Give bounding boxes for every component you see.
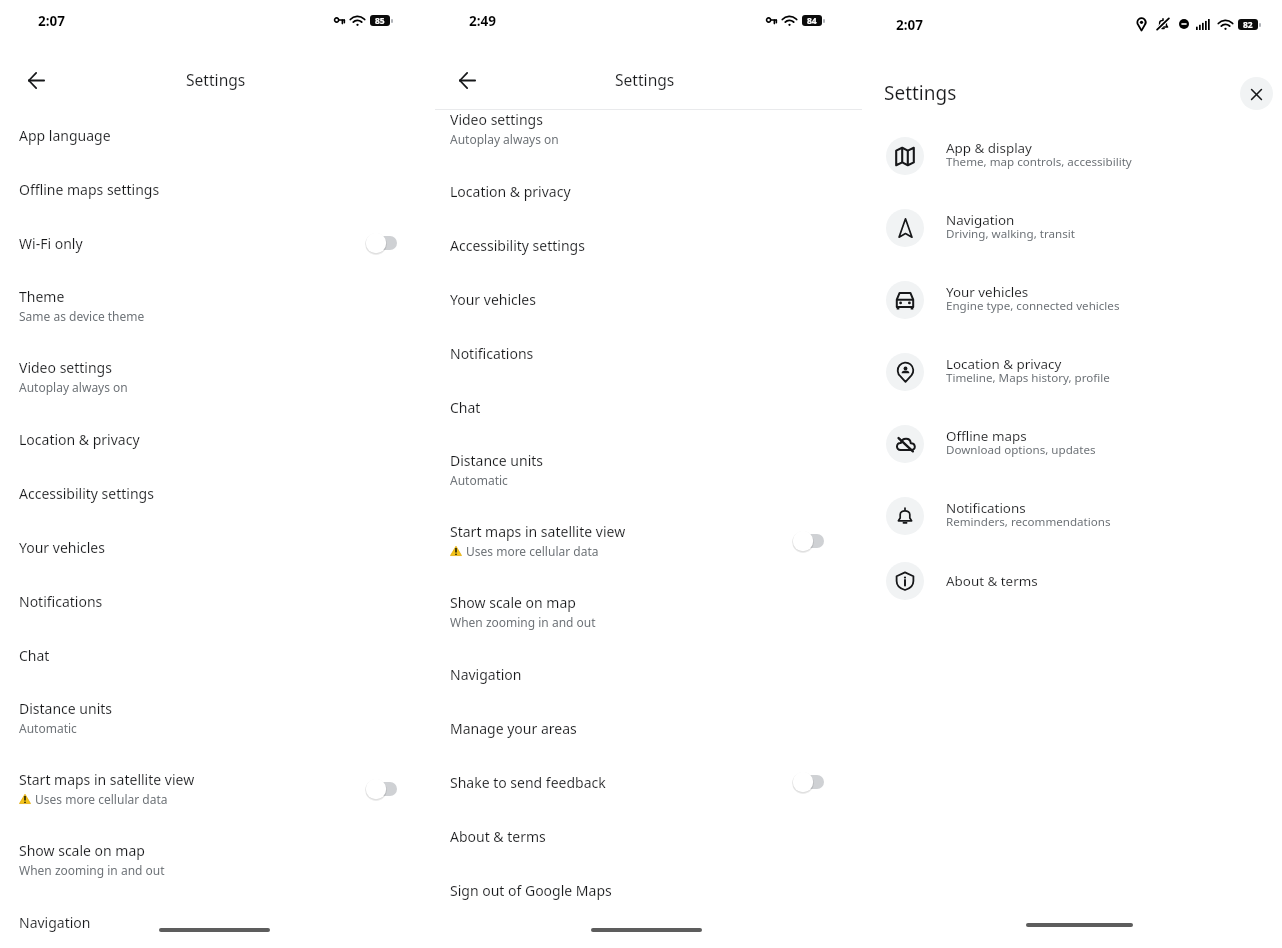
button[interactable]: Video settings <box>431 93 858 164</box>
button[interactable]: Location & privacy <box>431 164 858 218</box>
staticText: Start maps in satellite view <box>450 522 626 541</box>
staticText: Sign out of Google Maps <box>450 881 612 900</box>
staticText: Uses more cellular data <box>35 791 168 807</box>
button[interactable]: Shake to send feedback <box>431 755 858 809</box>
staticText: 2:49 <box>469 12 496 30</box>
button[interactable]: Notifications <box>858 480 1282 552</box>
staticText: Your vehicles <box>946 283 1029 301</box>
staticText: Notifications <box>450 344 534 363</box>
button[interactable]: About & terms <box>858 545 1282 617</box>
staticText: Navigation <box>19 913 91 932</box>
button[interactable]: Sign out of Google Maps <box>431 863 858 917</box>
staticText: Distance units <box>19 699 113 718</box>
button[interactable]: Toggle Start maps in satellite view, off <box>364 777 397 801</box>
staticText: Same as device theme <box>19 308 145 324</box>
staticText: Wi-Fi only <box>19 234 83 253</box>
button[interactable]: Your vehicles <box>858 264 1282 336</box>
button[interactable]: Location & privacy <box>0 412 431 466</box>
staticText: About & terms <box>450 827 546 846</box>
staticText: Shake to send feedback <box>450 773 606 792</box>
button[interactable]: Close <box>1240 77 1273 110</box>
staticText: Show scale on map <box>19 841 145 860</box>
button[interactable]: Accessibility settings <box>431 218 858 272</box>
staticText: App & display <box>946 139 1032 157</box>
button[interactable]: Your vehicles <box>431 272 858 326</box>
button[interactable]: Show scale on map <box>0 824 431 895</box>
staticText: Distance units <box>450 451 544 470</box>
button[interactable]: Navigation <box>858 192 1282 264</box>
staticText: When zooming in and out <box>19 862 165 878</box>
staticText: Accessibility settings <box>19 484 154 503</box>
button[interactable]: About & terms <box>431 809 858 863</box>
staticText: Chat <box>450 398 481 417</box>
staticText: Settings <box>884 80 957 106</box>
button[interactable]: Your vehicles <box>0 520 431 574</box>
staticText: Manage your areas <box>450 719 577 738</box>
staticText: Location & privacy <box>450 182 571 201</box>
staticText: When zooming in and out <box>450 614 596 630</box>
staticText: Show scale on map <box>450 593 576 612</box>
staticText: Your vehicles <box>450 290 536 309</box>
staticText: Engine type, connected vehicles <box>946 298 1120 314</box>
button[interactable]: Video settings <box>0 341 431 412</box>
staticText: Offline maps <box>946 427 1027 445</box>
button[interactable]: Accessibility settings <box>0 466 431 520</box>
staticText: 82 <box>1243 19 1253 30</box>
button[interactable]: Back <box>448 60 486 98</box>
staticText: Your vehicles <box>19 538 105 557</box>
staticText: Location & privacy <box>19 430 140 449</box>
staticText: Driving, walking, transit <box>946 226 1075 242</box>
button[interactable]: Toggle Shake to send feedback, off <box>791 770 824 794</box>
button[interactable]: Notifications <box>431 326 858 380</box>
staticText: Automatic <box>19 720 77 736</box>
button[interactable]: Chat <box>0 628 431 682</box>
staticText: Timeline, Maps history, profile <box>946 370 1110 386</box>
button[interactable]: Back <box>17 60 55 98</box>
staticText: Uses more cellular data <box>466 543 599 559</box>
staticText: 2:07 <box>38 12 65 30</box>
button[interactable]: App language <box>0 108 431 162</box>
button[interactable]: Distance units <box>431 434 858 505</box>
button[interactable]: Wi-Fi only <box>0 216 431 270</box>
button[interactable]: Start maps in satellite view <box>431 505 858 576</box>
staticText: 85 <box>375 15 385 26</box>
staticText: Theme <box>19 287 65 306</box>
staticText: Automatic <box>450 472 508 488</box>
button[interactable]: Navigation <box>0 895 431 948</box>
staticText: 84 <box>807 15 817 26</box>
button[interactable]: Notifications <box>0 574 431 628</box>
staticText: Download options, updates <box>946 442 1096 458</box>
staticText: Video settings <box>19 358 112 377</box>
staticText: Reminders, recommendations <box>946 514 1111 530</box>
button[interactable]: Theme <box>0 270 431 341</box>
staticText: Theme, map controls, accessibility <box>946 154 1132 170</box>
staticText: Notifications <box>19 592 103 611</box>
staticText: Location & privacy <box>946 355 1062 373</box>
staticText: Navigation <box>946 211 1015 229</box>
button[interactable]: Toggle Wi-Fi only, off <box>364 231 397 255</box>
staticText: Notifications <box>946 499 1026 517</box>
button[interactable]: Show scale on map <box>431 576 858 647</box>
button[interactable]: Navigation <box>431 647 858 701</box>
staticText: About & terms <box>946 572 1038 590</box>
staticText: Chat <box>19 646 50 665</box>
button[interactable]: App & display <box>858 120 1282 192</box>
staticText: Navigation <box>450 665 522 684</box>
staticText: Accessibility settings <box>450 236 585 255</box>
staticText: Video settings <box>450 110 543 129</box>
button[interactable]: Offline maps settings <box>0 162 431 216</box>
staticText: 2:07 <box>896 16 923 34</box>
button[interactable]: Start maps in satellite view <box>0 753 431 824</box>
staticText: Start maps in satellite view <box>19 770 195 789</box>
staticText: Autoplay always on <box>19 379 128 395</box>
staticText: Settings <box>615 69 675 90</box>
button[interactable]: Distance units <box>0 682 431 753</box>
button[interactable]: Offline maps <box>858 408 1282 480</box>
button[interactable]: Manage your areas <box>431 701 858 755</box>
button[interactable]: Chat <box>431 380 858 434</box>
staticText: Settings <box>186 69 246 90</box>
staticText: App language <box>19 126 111 145</box>
button[interactable]: Toggle Start maps in satellite view, off <box>791 529 824 553</box>
staticText: Autoplay always on <box>450 131 559 147</box>
button[interactable]: Location & privacy <box>858 336 1282 408</box>
